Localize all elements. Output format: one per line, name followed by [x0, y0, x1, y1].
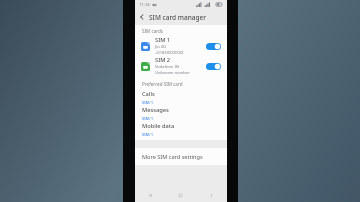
staticText: Vodafone IN: [155, 64, 179, 70]
staticText: Unknown number: [155, 70, 190, 76]
staticText: SIM 1: [142, 99, 154, 105]
staticText: SIM cards: [142, 28, 164, 34]
staticText: Mobile data: [142, 122, 175, 130]
staticText: Calls: [142, 90, 155, 98]
button[interactable]: Toggle SIM: [206, 62, 221, 71]
button[interactable]: Calls: [135, 89, 227, 105]
staticText: SIM card manager: [149, 13, 206, 22]
button[interactable]: Messages: [135, 105, 227, 121]
button[interactable]: Mobile data: [135, 121, 227, 137]
staticText: +9183XXXXXXX: [155, 50, 184, 56]
staticText: Jio 4G: [155, 44, 167, 50]
staticText: Messages: [142, 106, 169, 114]
staticText: SIM 1: [142, 115, 154, 121]
button[interactable]: Toggle SIM: [206, 42, 221, 51]
staticText: SIM 1: [142, 131, 154, 137]
button[interactable]: Home: [165, 188, 196, 202]
staticText: SIM 1: [155, 36, 171, 44]
button[interactable]: Recents: [135, 188, 165, 202]
button[interactable]: SIM 2: [135, 56, 227, 76]
button[interactable]: SIM 1: [135, 36, 227, 56]
staticText: 11:14: [139, 2, 150, 8]
staticText: More SIM card settings: [142, 153, 203, 161]
button[interactable]: More SIM card settings: [135, 148, 227, 165]
staticText: SIM 2: [155, 56, 171, 64]
button[interactable]: Back: [135, 10, 149, 24]
staticText: Preferred SIM card: [142, 81, 183, 87]
